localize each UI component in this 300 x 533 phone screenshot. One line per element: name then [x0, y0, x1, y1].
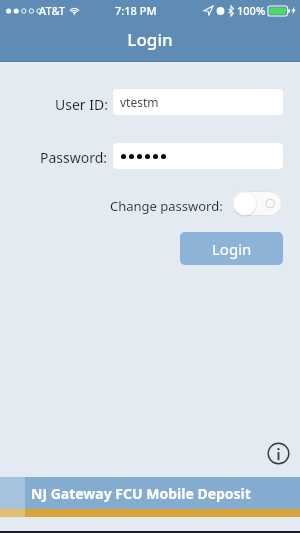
staticText: Password: — [40, 148, 108, 167]
staticText: User ID: — [55, 95, 108, 114]
staticText: 100% — [237, 3, 266, 18]
button[interactable]: Information — [266, 441, 291, 466]
staticText: 7:18 PM — [115, 3, 157, 18]
staticText: Change password: — [110, 197, 223, 215]
button[interactable] — [113, 143, 283, 169]
staticText: Login — [0, 28, 300, 51]
staticText: NJ Gateway FCU Mobile Deposit — [31, 484, 251, 503]
staticText: AT&T — [39, 3, 66, 18]
button[interactable]: Change password toggle — [232, 191, 282, 216]
button[interactable]: vtestm — [113, 89, 283, 115]
button[interactable]: Login — [180, 232, 283, 265]
staticText: Login — [212, 239, 252, 259]
staticText: vtestm — [120, 94, 159, 110]
